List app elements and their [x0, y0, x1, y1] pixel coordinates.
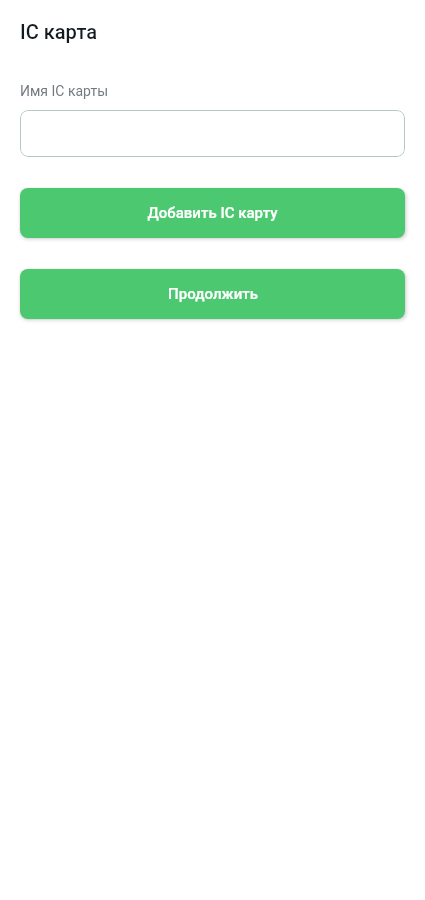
staticText: Добавить IC карту: [147, 204, 278, 222]
button[interactable]: Имя IC карты, поле ввода: [20, 110, 405, 157]
staticText: IC карта: [20, 20, 98, 43]
button[interactable]: Продолжить: [20, 269, 405, 319]
staticText: Продолжить: [168, 285, 258, 303]
staticText: Имя IC карты: [20, 83, 109, 99]
button[interactable]: Добавить IC карту: [20, 188, 405, 238]
